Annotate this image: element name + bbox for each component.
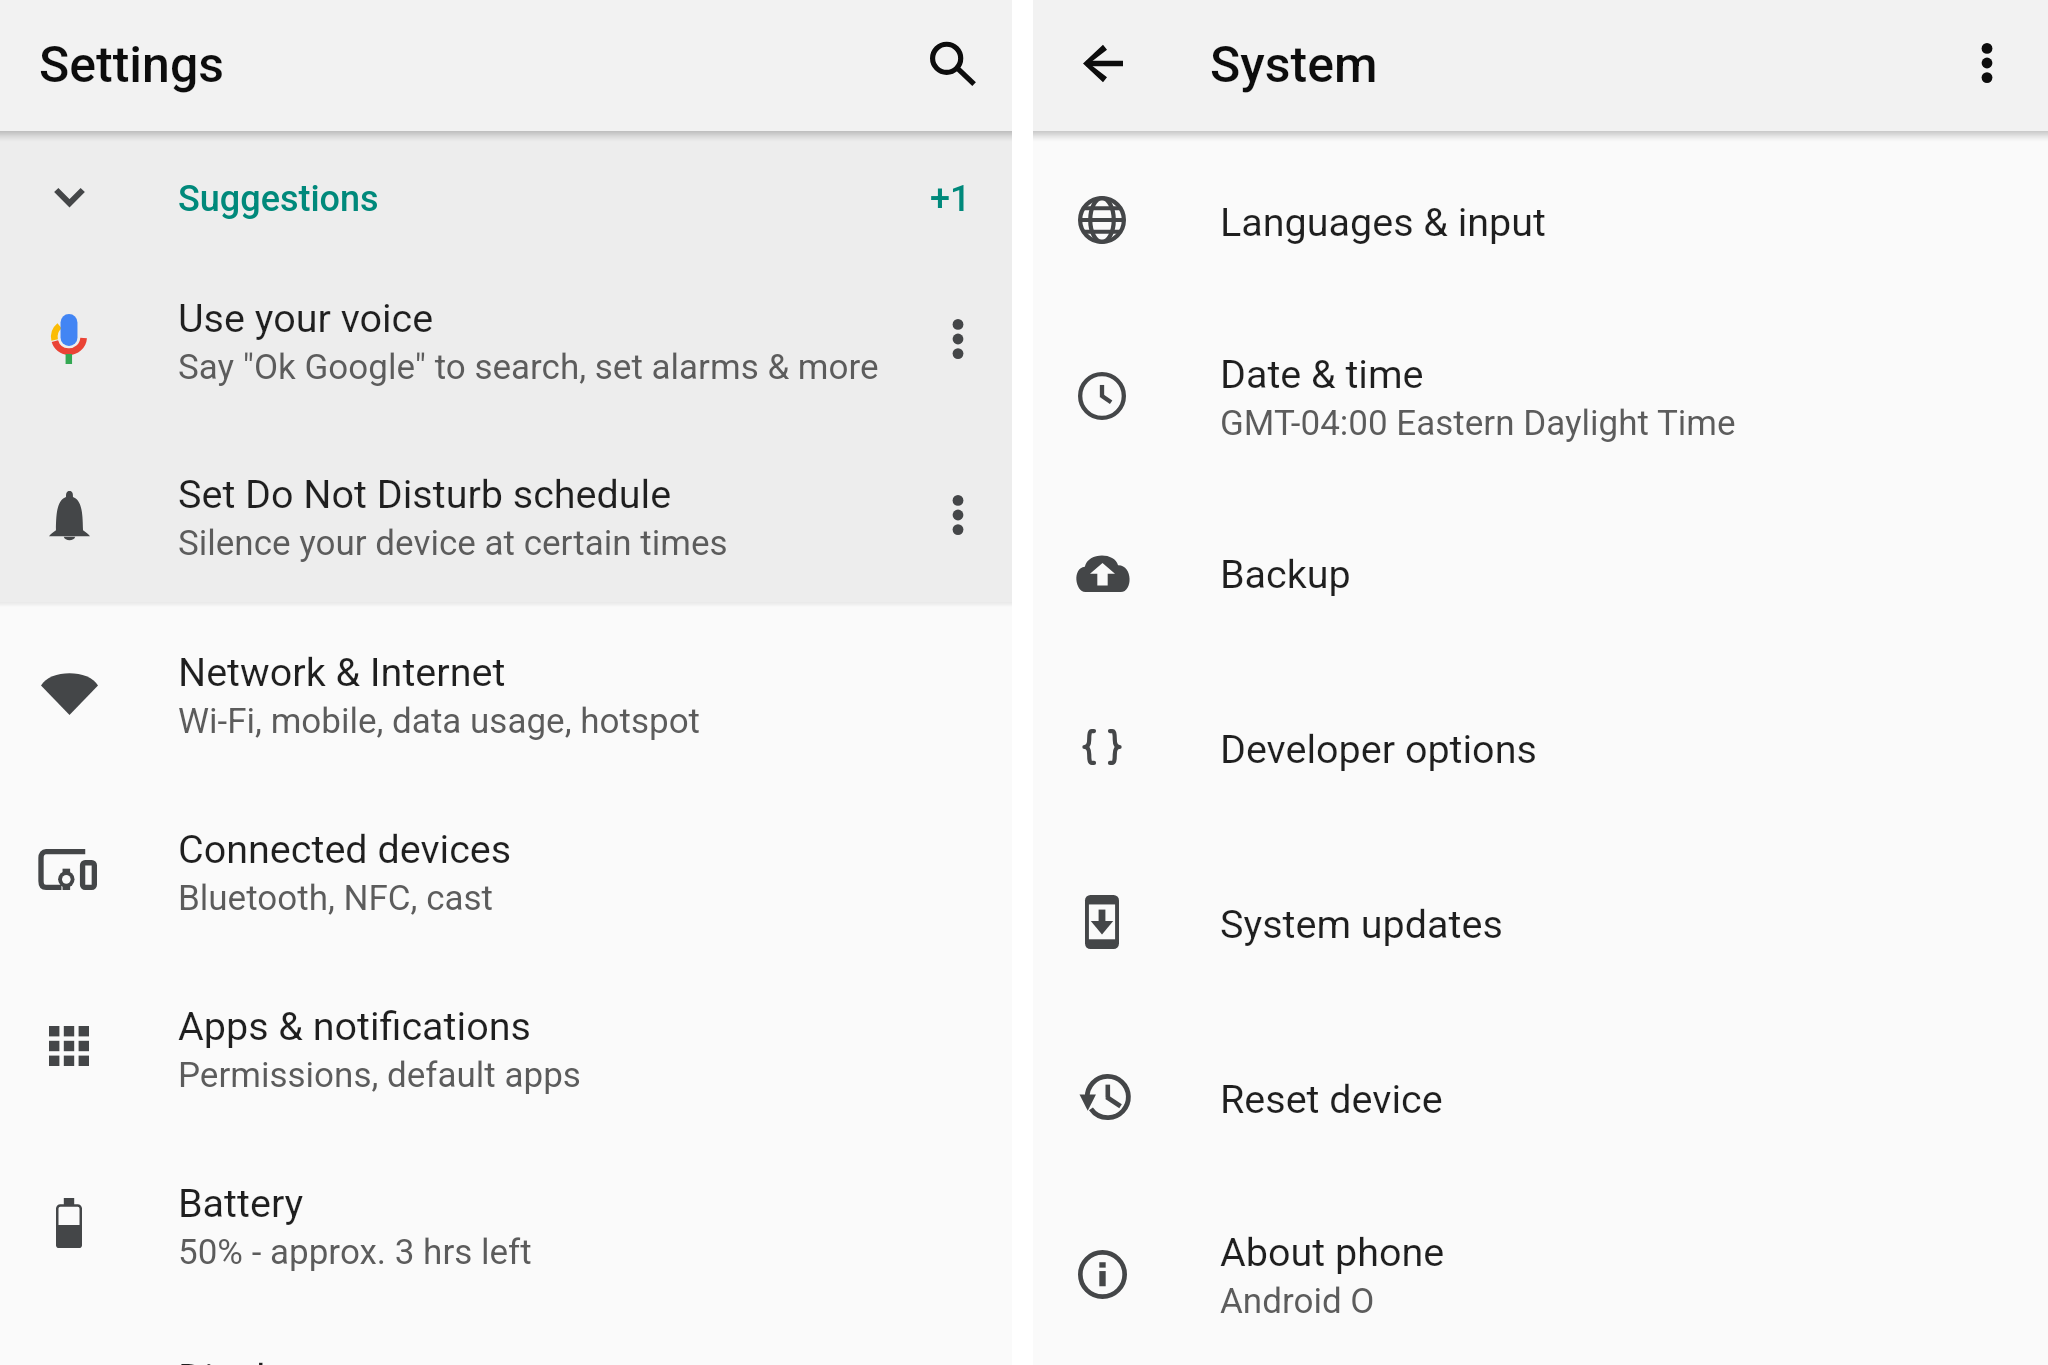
staticText: Settings (39, 36, 225, 95)
button[interactable]: More options (910, 291, 1006, 387)
button[interactable]: Search (904, 15, 1000, 111)
button[interactable]: Use your voice (0, 250, 1012, 426)
button[interactable]: Network & Internet (0, 602, 1012, 779)
staticText: Android O (1220, 1281, 1375, 1322)
button[interactable]: Suggestions (0, 131, 1012, 250)
staticText: Languages & input (1220, 199, 1546, 245)
button[interactable]: More options (1939, 15, 2035, 111)
button[interactable]: Back (1055, 15, 1151, 111)
button[interactable]: About phone (1033, 1184, 2048, 1361)
staticText: System updates (1220, 901, 1503, 947)
staticText: Apps & notifications (178, 1003, 531, 1049)
staticText: Silence your device at certain times (178, 523, 728, 564)
staticText: Developer options (1220, 726, 1537, 772)
staticText: Say "Ok Google" to search, set alarms & … (178, 347, 879, 388)
staticText: Display (178, 1355, 306, 1365)
staticText: GMT-04:00 Eastern Daylight Time (1220, 403, 1736, 444)
staticText: Backup (1220, 551, 1351, 597)
staticText: 50% - approx. 3 hrs left (178, 1232, 532, 1273)
staticText: Permissions, default apps (178, 1055, 581, 1096)
staticText: Connected devices (178, 826, 512, 872)
button[interactable]: More options (910, 467, 1006, 563)
button[interactable]: Battery (0, 1133, 1012, 1310)
button[interactable]: Set Do Not Disturb schedule (0, 426, 1012, 602)
button[interactable]: Developer options (1033, 658, 2048, 833)
button[interactable]: System updates (1033, 833, 2048, 1008)
staticText: About phone (1220, 1229, 1445, 1275)
staticText: Network & Internet (178, 649, 506, 695)
staticText: Reset device (1220, 1076, 1443, 1122)
staticText: Suggestions (178, 178, 379, 220)
button[interactable]: Reset device (1033, 1008, 2048, 1184)
staticText: Use your voice (178, 295, 434, 341)
staticText: +1 (930, 178, 971, 220)
button[interactable]: Apps & notifications (0, 956, 1012, 1133)
staticText: Battery (178, 1180, 304, 1226)
staticText: Date & time (1220, 351, 1424, 397)
button[interactable]: Connected devices (0, 779, 1012, 956)
button[interactable]: Backup (1033, 483, 2048, 658)
button[interactable]: Languages & input (1033, 131, 2048, 306)
staticText: Wi-Fi, mobile, data usage, hotspot (178, 701, 701, 742)
staticText: System (1210, 36, 1378, 95)
button[interactable]: Date & time (1033, 306, 2048, 483)
staticText: Bluetooth, NFC, cast (178, 878, 494, 919)
staticText: Set Do Not Disturb schedule (178, 471, 672, 517)
button[interactable]: Display (0, 1310, 1012, 1365)
